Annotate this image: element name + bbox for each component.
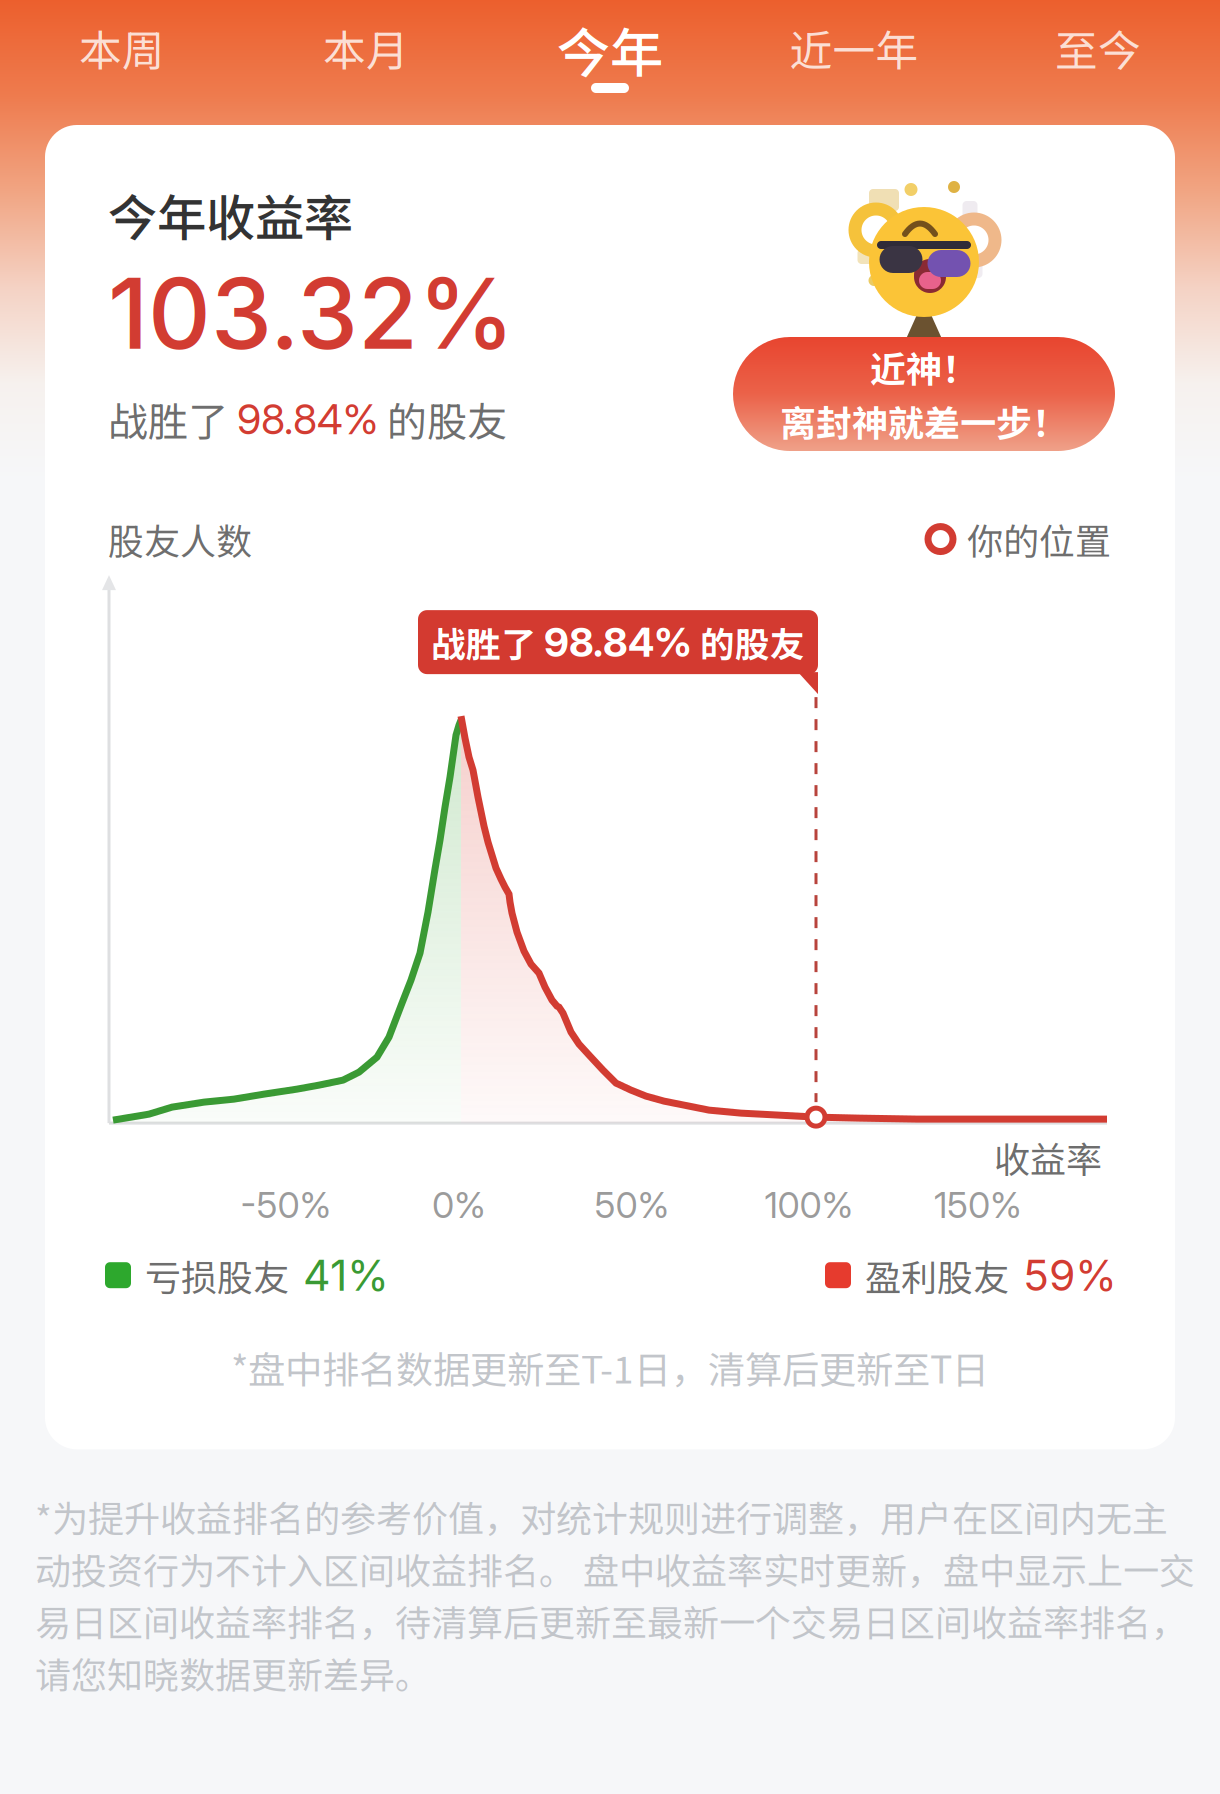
staticText: 战胜了 — [108, 390, 237, 448]
staticText: *盘中排名数据更新至T-1日，清算后更新至T日 — [231, 1340, 989, 1394]
staticText: 股友人数 — [108, 513, 252, 565]
staticText: 98.84% — [237, 394, 378, 444]
button[interactable]: 至今 — [976, 0, 1220, 125]
staticText: 59% — [1023, 1249, 1117, 1301]
staticText: 今年收益率 — [108, 179, 353, 250]
staticText: 战胜了 — [431, 617, 544, 667]
button[interactable]: 本周 — [0, 0, 244, 125]
staticText: 本月 — [323, 17, 409, 79]
staticText: 近一年 — [789, 17, 918, 79]
staticText: 本周 — [79, 17, 165, 79]
staticText: 近神！ — [870, 341, 978, 393]
staticText: 41% — [303, 1249, 389, 1301]
staticText: 你的位置 — [967, 513, 1111, 565]
button[interactable]: 本月 — [244, 0, 488, 125]
button[interactable]: 近一年 — [732, 0, 976, 125]
button[interactable]: 今年 — [488, 0, 732, 125]
staticText: 今年 — [557, 11, 663, 88]
staticText: 150% — [934, 1183, 1022, 1227]
staticText: 的股友 — [692, 617, 805, 667]
staticText: 离封神就差一步！ — [780, 395, 1068, 447]
staticText: 收益率 — [994, 1131, 1102, 1183]
staticText: 至今 — [1055, 17, 1141, 79]
staticText: -50% — [240, 1183, 331, 1227]
staticText: 100% — [764, 1183, 853, 1227]
staticText: 亏损股友 — [145, 1249, 289, 1301]
staticText: 的股友 — [378, 390, 507, 448]
staticText: 98.84% — [544, 618, 692, 666]
staticText: *为提升收益排名的参考价值，对统计规则进行调整，用户在区间内无主动投资行为不计入… — [35, 1490, 1195, 1699]
staticText: 50% — [594, 1183, 669, 1227]
staticText: 盈利股友 — [865, 1249, 1009, 1301]
staticText: 103.32% — [108, 254, 515, 372]
staticText: 0% — [432, 1183, 486, 1227]
